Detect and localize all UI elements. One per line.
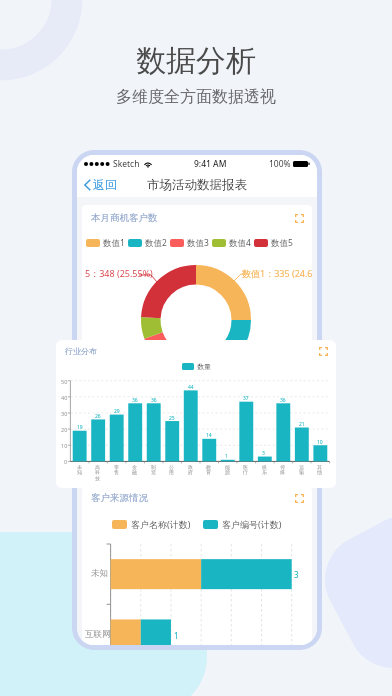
staticText: 数据分析 <box>0 42 392 80</box>
staticText: 37 <box>243 395 249 402</box>
staticText: 36 <box>280 397 286 404</box>
staticText: 互联网 <box>85 629 111 640</box>
staticText: 1 <box>225 453 228 460</box>
staticText: 返回 <box>93 177 117 192</box>
button[interactable]: 返回 <box>84 172 117 197</box>
staticText: 19 <box>77 424 83 431</box>
staticText: 5：348 (25.55%) <box>85 267 153 279</box>
staticText: 数值2 <box>145 237 167 249</box>
staticText: 20 <box>61 426 68 433</box>
staticText: 政 府 <box>188 464 193 476</box>
staticText: 客户名称(计数) <box>131 518 191 530</box>
staticText: 40 <box>61 394 68 401</box>
staticText: 未 知 <box>77 464 82 476</box>
staticText: 本月商机客户数 <box>91 212 158 224</box>
staticText: 公 用 <box>169 464 174 476</box>
staticText: 30 <box>61 410 68 417</box>
staticText: 传 媒 <box>280 464 285 476</box>
staticText: 29 <box>114 408 120 415</box>
staticText: 50 <box>61 378 68 385</box>
staticText: 医 疗 <box>243 464 248 476</box>
staticText: 行业分布 <box>65 346 97 356</box>
staticText: 多维度全方面数据透视 <box>0 87 392 107</box>
staticText: 数值1：335 (24.6 <box>242 267 312 279</box>
staticText: 数值3 <box>187 237 209 249</box>
staticText: 数量 <box>197 362 211 371</box>
staticText: 高 科 技 <box>95 464 100 482</box>
staticText: 0 <box>64 458 68 465</box>
staticText: Sketch <box>113 158 140 170</box>
staticText: 14 <box>206 432 212 439</box>
staticText: 其 他 <box>317 464 322 476</box>
button[interactable]: Expand source chart <box>295 494 304 503</box>
staticText: 娱 乐 <box>262 464 267 476</box>
button[interactable]: Expand chart <box>295 214 304 223</box>
staticText: 9:41 AM <box>194 158 227 170</box>
staticText: 3 <box>294 569 299 580</box>
staticText: 3 <box>262 450 265 457</box>
staticText: 零 售 <box>114 464 119 476</box>
staticText: 10 <box>61 442 68 449</box>
staticText: 数值4 <box>229 237 251 249</box>
staticText: 教 育 <box>206 464 211 476</box>
staticText: 客户编号(计数) <box>222 518 282 530</box>
staticText: 100% <box>269 158 291 170</box>
staticText: 市场活动数据报表 <box>147 177 247 193</box>
button[interactable]: Expand industry chart <box>319 347 328 356</box>
staticText: 10 <box>317 439 323 446</box>
staticText: 制 造 <box>151 464 156 476</box>
staticText: 未知 <box>91 568 108 579</box>
staticText: 运 输 <box>299 464 304 476</box>
staticText: 44 <box>188 384 194 391</box>
staticText: 数值1 <box>103 237 125 249</box>
staticText: 25 <box>169 415 175 422</box>
staticText: 能 源 <box>225 464 230 476</box>
staticText: 客户来源情况 <box>91 492 148 504</box>
staticText: 36 <box>132 397 138 404</box>
staticText: 金 融 <box>132 464 137 476</box>
staticText: 26 <box>95 413 101 420</box>
staticText: 21 <box>299 421 305 428</box>
staticText: 36 <box>151 397 157 404</box>
staticText: 1 <box>174 630 179 641</box>
staticText: 数值5 <box>271 237 293 249</box>
